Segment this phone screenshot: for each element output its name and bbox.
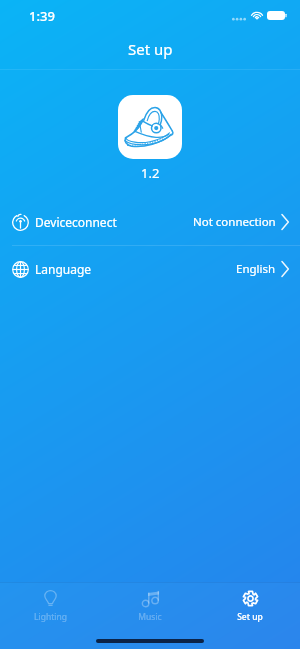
button[interactable]: Device xyxy=(118,95,182,159)
staticText: Not connection xyxy=(193,214,276,230)
staticText: 1.2 xyxy=(141,164,160,182)
staticText: Music xyxy=(138,611,162,623)
staticText: Deviceconnect xyxy=(35,214,117,230)
staticText: English xyxy=(236,261,276,277)
button[interactable]: Music xyxy=(100,590,200,623)
button[interactable]: Deviceconnect xyxy=(0,199,300,245)
staticText: Set up xyxy=(128,39,173,59)
staticText: 1:39 xyxy=(29,7,55,25)
button[interactable]: Lighting xyxy=(0,590,100,623)
staticText: Lighting xyxy=(34,611,67,623)
button[interactable]: Set up xyxy=(200,590,300,623)
staticText: Set up xyxy=(237,611,263,623)
staticText: Language xyxy=(35,261,92,277)
button[interactable]: Language xyxy=(0,246,300,292)
